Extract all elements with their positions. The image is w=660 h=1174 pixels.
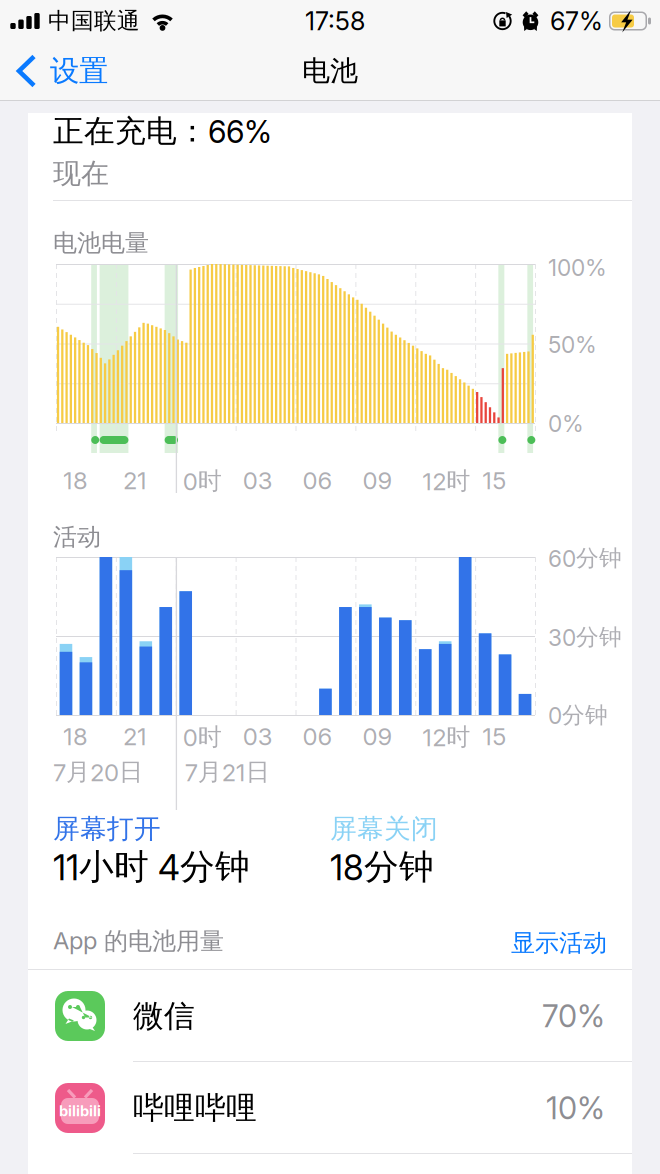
staticText: 03	[243, 466, 273, 495]
staticText: 哔哩哔哩	[133, 1089, 257, 1127]
button[interactable]: bilibili	[28, 1062, 632, 1154]
staticText: 显示活动	[511, 928, 607, 958]
staticText: 中国联通	[48, 7, 140, 35]
staticText: 09	[362, 722, 392, 751]
staticText: App 的电池用量	[53, 926, 224, 956]
staticText: 21	[123, 466, 147, 495]
staticText: 06	[302, 466, 332, 495]
staticText: 屏幕关闭	[330, 812, 438, 846]
staticText: 活动	[53, 522, 101, 552]
staticText: 0时	[183, 466, 222, 496]
staticText: 03	[243, 722, 273, 751]
staticText: 10%	[546, 1089, 605, 1126]
staticText: 67%	[550, 6, 603, 36]
staticText: 0%	[548, 410, 584, 437]
staticText: 0分钟	[548, 701, 608, 730]
button[interactable]: 微信	[28, 970, 632, 1062]
staticText: 18	[63, 722, 88, 751]
staticText: 09	[362, 466, 392, 495]
staticText: 11小时 4分钟	[53, 845, 250, 889]
staticText: 06	[302, 722, 332, 751]
staticText: 18	[63, 466, 88, 495]
staticText: 21	[123, 722, 147, 751]
staticText: 70%	[542, 997, 605, 1034]
staticText: 17:58	[305, 6, 365, 36]
staticText: 30分钟	[548, 623, 622, 652]
staticText: 18分钟	[330, 845, 434, 889]
staticText: 0时	[183, 722, 222, 752]
staticText: 60分钟	[548, 544, 622, 573]
staticText: 微信	[133, 997, 195, 1035]
staticText: 设置	[50, 52, 108, 89]
staticText: 12时	[422, 722, 470, 752]
staticText: 电池	[302, 53, 358, 89]
staticText: 12时	[422, 466, 470, 496]
staticText: 屏幕打开	[53, 812, 161, 846]
button[interactable]: 显示活动	[0, 926, 607, 960]
staticText: 100%	[548, 254, 607, 281]
staticText: bilibili	[59, 1102, 101, 1120]
staticText: 50%	[548, 331, 597, 358]
staticText: 7月21日	[185, 757, 270, 787]
button[interactable]: 设置	[0, 42, 118, 100]
staticText: 15	[482, 466, 506, 495]
staticText: 15	[482, 722, 506, 751]
staticText: 现在	[53, 156, 109, 191]
staticText: 7月20日	[53, 757, 143, 787]
staticText: 电池电量	[53, 228, 149, 258]
staticText: 正在充电：66%	[53, 112, 272, 151]
